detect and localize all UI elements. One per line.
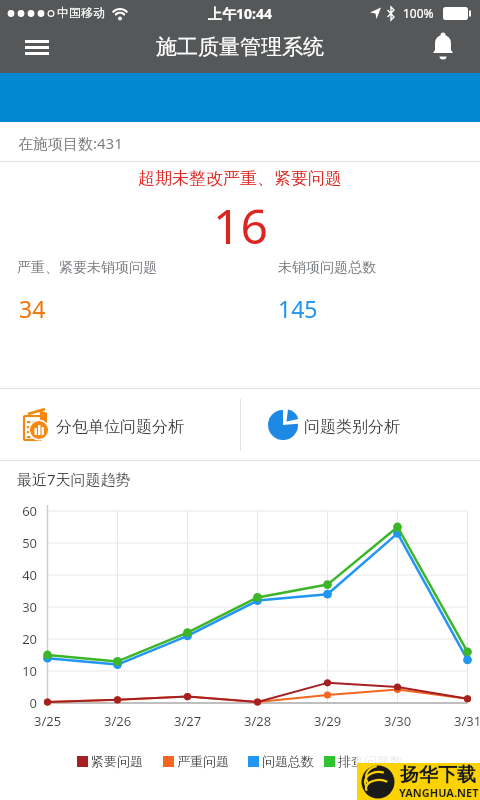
button[interactable] xyxy=(12,26,58,72)
staticText: 中国移动 xyxy=(57,5,105,20)
staticText: 上午10:44 xyxy=(208,4,272,23)
staticText: 50 xyxy=(6,534,37,552)
staticText: 在施项目数:431 xyxy=(18,133,123,153)
staticText: 20 xyxy=(6,630,37,648)
staticText: 34 xyxy=(19,293,46,324)
staticText: 问题总数 xyxy=(262,753,314,769)
staticText: 超期未整改严重、紧要问题 xyxy=(138,168,342,189)
staticText: 0 xyxy=(6,694,37,712)
staticText: 3/29 xyxy=(314,712,342,730)
staticText: 问题类别分析 xyxy=(304,417,400,437)
staticText: 3/27 xyxy=(174,712,202,730)
staticText: 紧要问题 xyxy=(91,753,143,769)
staticText: 排查问题数 xyxy=(338,753,403,769)
staticText: 施工质量管理系统 xyxy=(156,34,324,60)
staticText: 40 xyxy=(6,566,37,584)
staticText: 未销项问题总数 xyxy=(278,259,376,277)
staticText: 3/25 xyxy=(34,712,62,730)
staticText: YANGHUA.NET xyxy=(399,785,479,800)
staticText: 严重问题 xyxy=(177,753,229,769)
staticText: 10 xyxy=(6,662,37,680)
button[interactable]: 问题类别分析 xyxy=(240,389,480,460)
staticText: 145 xyxy=(278,293,318,324)
button[interactable]: 分包单位问题分析 xyxy=(0,389,240,460)
button[interactable] xyxy=(421,27,465,71)
staticText: 60 xyxy=(6,502,37,520)
staticText: 3/31 xyxy=(454,712,480,730)
staticText: 3/28 xyxy=(244,712,272,730)
staticText: 30 xyxy=(6,598,37,616)
staticText: 3/30 xyxy=(384,712,412,730)
staticText: 100% xyxy=(403,5,434,21)
staticText: 3/26 xyxy=(104,712,132,730)
staticText: 扬华下载 xyxy=(400,763,476,787)
staticText: 分包单位问题分析 xyxy=(56,417,184,437)
staticText: 最近7天问题趋势 xyxy=(17,469,131,489)
staticText: 严重、紧要未销项问题 xyxy=(17,259,157,277)
staticText: 16 xyxy=(213,193,268,258)
